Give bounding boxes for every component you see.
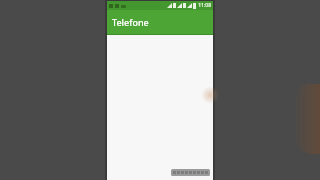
staticText: Telefone: [112, 16, 149, 28]
staticText: 11:08: [198, 2, 211, 9]
button[interactable]: Toast message: [171, 169, 210, 176]
button[interactable]: Telefone: [107, 10, 213, 34]
